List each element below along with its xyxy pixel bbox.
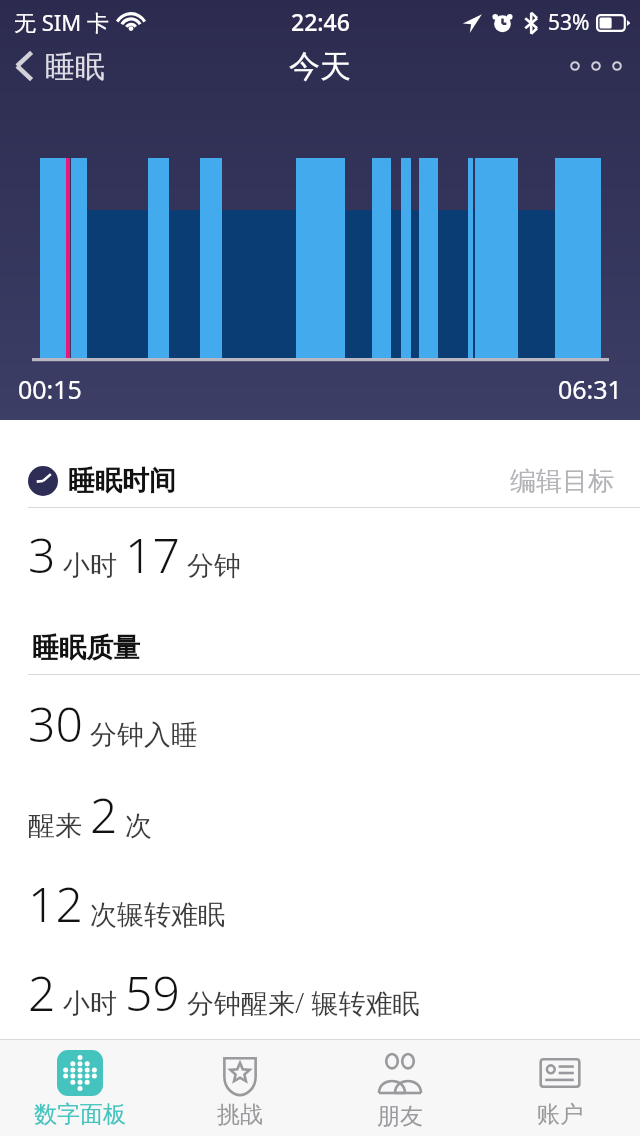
staticText: 醒来 bbox=[28, 806, 90, 843]
staticText: 06:31 bbox=[558, 372, 622, 406]
button[interactable]: 账户 bbox=[480, 1040, 640, 1136]
staticText: 小时 bbox=[56, 984, 125, 1021]
staticText: 次 bbox=[118, 806, 153, 843]
button[interactable]: 数字面板 bbox=[0, 1040, 160, 1136]
staticText: 分钟入睡 bbox=[83, 715, 199, 752]
staticText: 无 SIM 卡 bbox=[14, 7, 109, 37]
staticText: 30 bbox=[28, 691, 83, 756]
staticText: 17 bbox=[125, 522, 180, 587]
staticText: 12 bbox=[28, 871, 83, 936]
button[interactable]: 挑战 bbox=[160, 1040, 320, 1136]
staticText: 数字面板 bbox=[34, 1100, 126, 1129]
button[interactable]: More options bbox=[552, 49, 640, 83]
staticText: 朋友 bbox=[377, 1102, 423, 1130]
staticText: 挑战 bbox=[217, 1100, 263, 1129]
staticText: 睡眠质量 bbox=[32, 631, 140, 665]
staticText: 今天 bbox=[289, 47, 351, 86]
staticText: 59 bbox=[125, 960, 180, 1025]
staticText: 2 bbox=[90, 782, 118, 847]
staticText: 次辗转难眠 bbox=[83, 895, 226, 932]
button[interactable]: 睡眠时间 bbox=[0, 464, 640, 498]
staticText: 3 bbox=[28, 522, 56, 587]
button[interactable]: 朋友 bbox=[320, 1040, 480, 1136]
staticText: 睡眠 bbox=[45, 48, 105, 84]
button[interactable]: 睡眠 bbox=[0, 44, 115, 88]
button[interactable]: 编辑目标 bbox=[510, 465, 614, 498]
staticText: 22:46 bbox=[291, 6, 350, 37]
staticText: 2 bbox=[28, 960, 56, 1025]
staticText: 53% bbox=[548, 8, 590, 37]
staticText: 账户 bbox=[537, 1100, 583, 1129]
staticText: 分钟醒来/ 辗转难眠 bbox=[180, 984, 420, 1021]
staticText: 小时 bbox=[56, 546, 125, 583]
staticText: 00:15 bbox=[18, 372, 82, 406]
staticText: 睡眠时间 bbox=[68, 464, 176, 498]
staticText: 分钟 bbox=[180, 546, 242, 583]
